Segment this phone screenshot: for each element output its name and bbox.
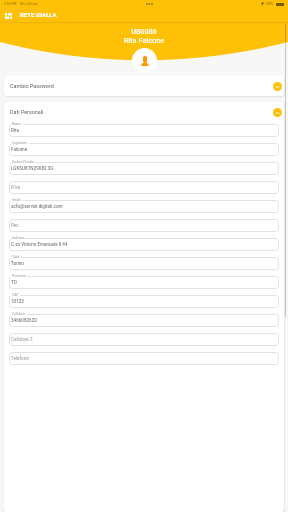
staticText: P.Iva (11, 185, 21, 190)
staticText: Dati Personali (10, 109, 44, 115)
staticText: Torino (11, 261, 24, 266)
staticText: Cellulare (12, 312, 26, 316)
button[interactable]: acfo@servizi-digitali.com (9, 200, 279, 213)
staticText: US0036 (0, 27, 288, 35)
staticText: Cambio Password (10, 83, 54, 89)
staticText: Falcone (11, 147, 28, 152)
staticText: Rita Falcone (0, 36, 288, 45)
staticText: Provincia (12, 274, 26, 278)
staticText: RETE GIALLA (20, 12, 57, 19)
staticText: Telefono (11, 356, 29, 361)
staticText: Cellulare 2 (11, 337, 33, 342)
staticText: LGKSU8TN29082 3G (11, 166, 54, 171)
staticText: Indirizzo (12, 236, 25, 240)
staticText: C.so Vittorio Emanuele II 44 (11, 242, 68, 247)
staticText: 3466082620 (11, 318, 37, 323)
staticText: Rita (11, 128, 19, 133)
button[interactable]: Menu (2, 9, 15, 22)
button[interactable]: Pec (9, 219, 279, 232)
staticText: 100% (265, 2, 274, 6)
button[interactable]: Torino (9, 257, 279, 270)
button[interactable]: LGKSU8TN29082 3G (9, 162, 279, 175)
button[interactable]: P.Iva (9, 181, 279, 194)
button[interactable]: Rita (9, 124, 279, 137)
button[interactable]: TO (9, 276, 279, 289)
button[interactable]: Cambio Password (4, 76, 284, 96)
staticText: CAP (12, 293, 19, 297)
button[interactable]: Telefono (9, 352, 279, 365)
button[interactable]: C.so Vittorio Emanuele II 44 (9, 238, 279, 251)
staticText: 10123 (11, 299, 24, 304)
button[interactable]: Cellulare 2 (9, 333, 279, 346)
staticText: Mer 20-mar (20, 2, 38, 6)
staticText: Pec (11, 223, 19, 228)
staticText: 2:56 PM (4, 2, 17, 6)
button[interactable]: Falcone (9, 143, 279, 156)
button[interactable]: 10123 (9, 295, 279, 308)
staticText: Città (12, 255, 20, 259)
staticText: Cognome (12, 141, 27, 145)
staticText: acfo@servizi-digitali.com (11, 204, 63, 209)
button[interactable]: 3466082620 (9, 314, 279, 327)
staticText: TO (11, 280, 17, 285)
staticText: Codice Fiscale (12, 160, 34, 164)
button[interactable]: Dati Personali (4, 102, 284, 122)
staticText: Nome (12, 122, 22, 126)
staticText: Email (12, 198, 21, 202)
